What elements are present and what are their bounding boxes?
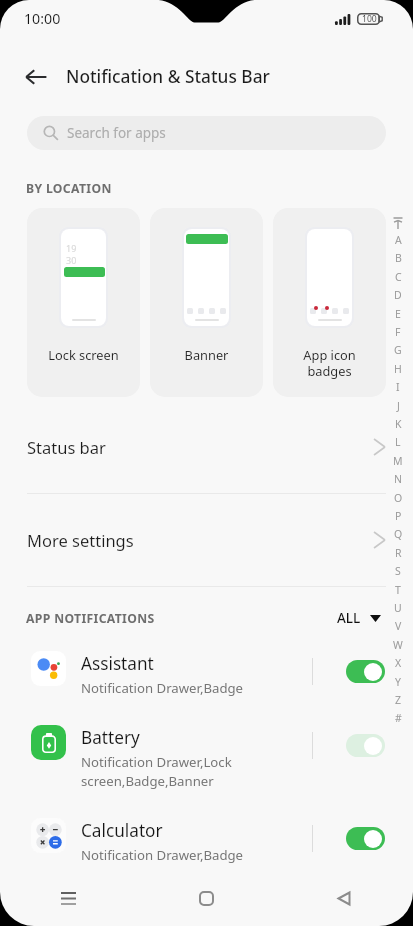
button[interactable]: App icon badges	[273, 208, 386, 397]
staticText: APP NOTIFICATIONS	[26, 610, 155, 627]
staticText: L	[395, 435, 401, 449]
staticText: R	[395, 546, 402, 560]
button[interactable]: Back	[17, 58, 55, 96]
button[interactable]: Calculator	[0, 819, 413, 881]
button[interactable]: 19	[27, 208, 140, 397]
staticText: Battery	[81, 726, 140, 749]
button[interactable]: Toggle notifications	[346, 734, 385, 757]
staticText: X	[395, 656, 402, 670]
staticText: A	[395, 233, 402, 247]
staticText: W	[393, 638, 403, 652]
staticText: E	[395, 307, 401, 321]
button[interactable]: Status bar	[0, 400, 413, 493]
staticText: Y	[395, 675, 401, 689]
button[interactable]: Recent apps	[0, 870, 137, 926]
button[interactable]: Back	[275, 870, 413, 926]
button[interactable]: More settings	[0, 493, 413, 586]
staticText: C	[395, 270, 402, 284]
staticText: Z	[395, 693, 402, 707]
staticText: H	[394, 362, 402, 376]
staticText: 30	[66, 254, 77, 266]
staticText: Notification & Status Bar	[66, 65, 270, 89]
staticText: Notification Drawer,Lock screen,Badge,Ba…	[81, 753, 232, 790]
staticText: Banner	[150, 346, 263, 363]
staticText: BY LOCATION	[26, 180, 112, 197]
staticText: More settings	[27, 529, 134, 551]
staticText: Q	[394, 527, 403, 541]
staticText: Status bar	[27, 436, 106, 458]
button[interactable]: Battery	[0, 726, 413, 808]
staticText: I	[396, 380, 400, 394]
staticText: G	[394, 343, 402, 357]
staticText: ALL	[337, 609, 361, 627]
staticText: N	[394, 472, 402, 486]
staticText: J	[397, 399, 400, 413]
staticText: Search for apps	[67, 124, 166, 142]
staticText: App icon badges	[273, 346, 386, 380]
staticText: U	[394, 601, 402, 615]
staticText: F	[395, 325, 401, 339]
staticText: V	[395, 619, 402, 633]
button[interactable]: Toggle notifications	[346, 660, 385, 683]
staticText: 100	[362, 13, 377, 25]
button[interactable]: Toggle notifications	[346, 827, 385, 850]
staticText: Assistant	[81, 652, 154, 675]
staticText: D	[394, 288, 402, 302]
staticText: #	[395, 711, 402, 725]
staticText: B	[395, 251, 402, 265]
staticText: P	[395, 509, 402, 523]
button[interactable]: ALL	[337, 609, 381, 627]
staticText: K	[395, 417, 402, 431]
staticText: Calculator	[81, 819, 163, 842]
staticText: 10:00	[24, 9, 61, 28]
staticText: Notification Drawer,Badge	[81, 679, 244, 697]
button[interactable]: Assistant	[0, 652, 413, 714]
staticText: O	[394, 491, 403, 505]
staticText: 19	[66, 242, 77, 254]
staticText: Lock screen	[27, 346, 140, 363]
staticText: S	[395, 564, 401, 578]
staticText: T	[395, 583, 401, 597]
button[interactable]: Search for apps	[27, 116, 386, 150]
button[interactable]: Home	[137, 870, 275, 926]
staticText: M	[393, 454, 403, 468]
button[interactable]: Banner	[150, 208, 263, 397]
button[interactable]: Alphabet index	[388, 214, 408, 726]
staticText: Notification Drawer,Badge	[81, 846, 244, 864]
